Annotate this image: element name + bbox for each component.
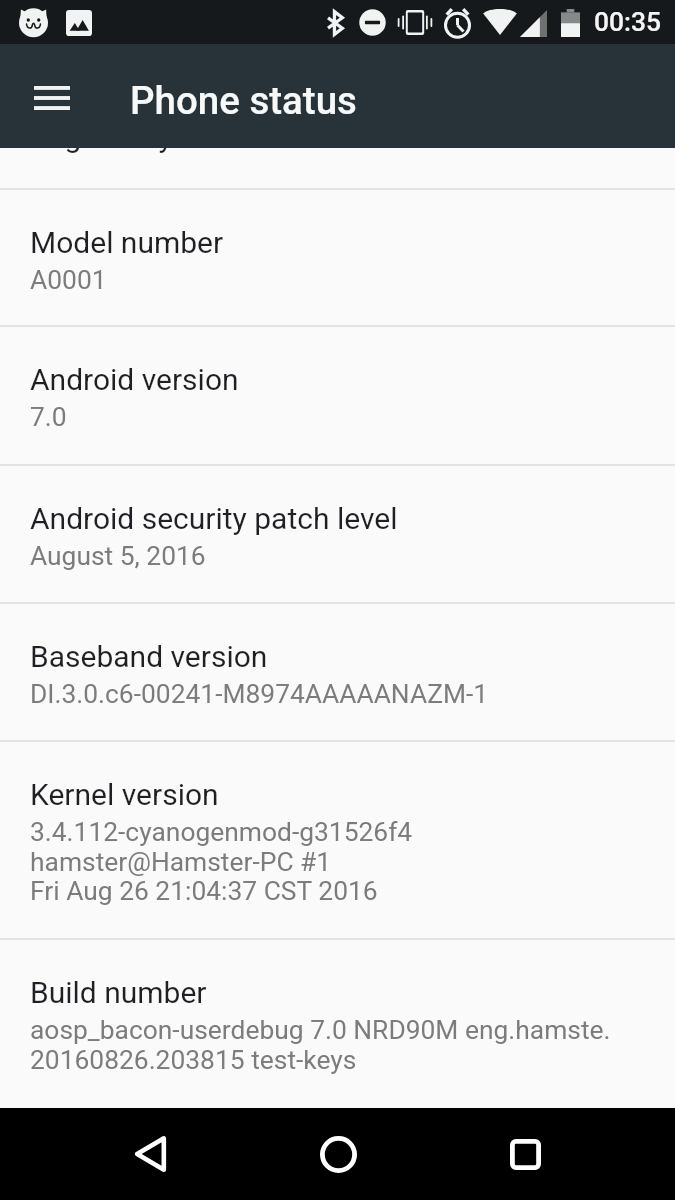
staticText: August 5, 2016	[30, 541, 206, 572]
button[interactable]: Home	[292, 1108, 384, 1200]
staticText: Baseband version	[30, 639, 268, 674]
button[interactable]: Back	[104, 1108, 196, 1200]
other: CyanogenMod	[19, 9, 48, 38]
staticText: 00:35	[594, 7, 661, 38]
staticText: 3.4.112-cyanogenmod-g31526f4 hamster@Ham…	[30, 817, 413, 906]
staticText: Regulatory information	[30, 119, 336, 154]
staticText: Model number	[30, 225, 224, 260]
button[interactable]: Android version	[0, 327, 675, 464]
button[interactable]: Open navigation menu	[0, 44, 104, 148]
button[interactable]: Baseband version	[0, 604, 675, 740]
staticText: DI.3.0.c6-00241-M8974AAAAANAZM-1	[30, 679, 489, 710]
staticText: Android security patch level	[30, 501, 398, 536]
staticText: 7.0	[30, 402, 67, 433]
button[interactable]: Kernel version	[0, 742, 675, 938]
staticText: Kernel version	[30, 777, 219, 812]
staticText: A0001	[30, 265, 107, 296]
button[interactable]: Android security patch level	[0, 466, 675, 602]
staticText: Android version	[30, 362, 239, 397]
other: Screenshot	[66, 10, 92, 36]
button[interactable]: Recent apps	[479, 1108, 571, 1200]
button[interactable]: Build number	[0, 940, 675, 1107]
staticText: aosp_bacon-userdebug 7.0 NRD90M eng.hams…	[30, 1015, 611, 1075]
button[interactable]: Model number	[0, 190, 675, 325]
staticText: Phone status	[130, 78, 357, 123]
button[interactable]: Regulatory information	[0, 119, 675, 188]
staticText: Build number	[30, 975, 207, 1010]
